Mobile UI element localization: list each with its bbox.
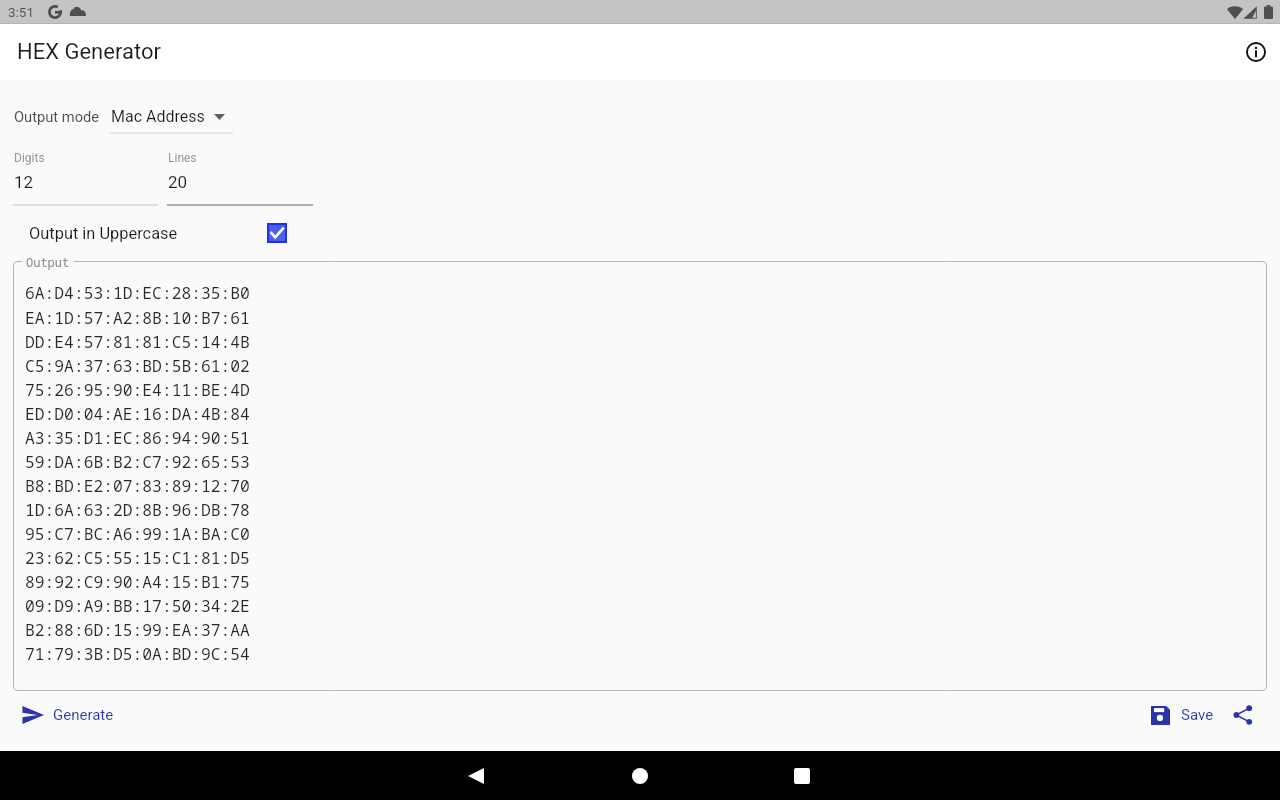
staticText: Digits (14, 151, 45, 165)
staticText: Output (26, 254, 70, 270)
button[interactable]: About (1232, 28, 1280, 76)
button[interactable]: Share (1222, 694, 1264, 736)
staticText: Mac Address (111, 107, 205, 126)
button[interactable]: Home (616, 752, 664, 800)
staticText: Save (1181, 706, 1214, 724)
staticText: Lines (168, 151, 197, 165)
staticText: 3:51 (8, 4, 35, 20)
button[interactable]: Lines (167, 146, 313, 207)
staticText: HEX Generator (17, 39, 161, 65)
staticText: Generate (53, 706, 114, 724)
staticText: 20 (168, 172, 188, 192)
staticText: Output in Uppercase (29, 224, 178, 243)
button[interactable]: Save (1143, 693, 1222, 737)
staticText: 12 (14, 172, 34, 192)
staticText: Output mode (14, 108, 100, 125)
button[interactable]: Output in Uppercase (14, 216, 286, 250)
button[interactable]: Recents (778, 752, 826, 800)
button[interactable]: Output (13, 261, 1267, 691)
button[interactable]: Digits (13, 146, 158, 207)
button[interactable]: Output mode: Mac Address (110, 104, 233, 135)
button[interactable]: Back (452, 752, 500, 800)
staticText: 6A:D4:53:1D:EC:28:35:B0 EA:1D:57:A2:8B:1… (25, 282, 250, 665)
button[interactable]: Generate (14, 693, 122, 737)
